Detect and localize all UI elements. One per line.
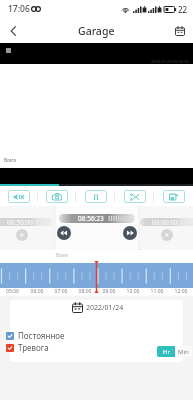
staticText: 2025-01-03 05:56:30 — [151, 59, 189, 64]
staticText: Всего — [4, 157, 17, 163]
button[interactable]: 2022/01/24 — [70, 300, 126, 315]
button[interactable]: Forward — [123, 226, 137, 240]
staticText: Hr — [163, 348, 170, 356]
staticText: 08:50:00 — [7, 218, 33, 226]
button[interactable]: Rewind — [57, 226, 71, 240]
staticText: 2022/01/24 — [86, 303, 124, 313]
staticText: Min — [178, 348, 189, 356]
staticText: Garage — [78, 24, 115, 38]
button[interactable]: Тревога — [4, 340, 51, 355]
button[interactable]: Min — [175, 346, 192, 357]
staticText: 12:00 — [169, 288, 193, 295]
staticText: Всего — [139, 248, 152, 254]
staticText: 11:00 — [145, 288, 169, 295]
button[interactable]: Hr — [157, 346, 175, 357]
button[interactable]: Mute — [8, 190, 30, 203]
staticText: 06:00 — [25, 288, 49, 295]
button[interactable]: Back — [0, 18, 26, 43]
staticText: Всего — [56, 252, 69, 258]
button[interactable]: Snapshot — [46, 190, 68, 203]
button[interactable]: 08:50:00 — [0, 218, 52, 246]
button[interactable]: 09:00:00 — [140, 218, 193, 246]
button[interactable]: Calendar — [167, 18, 193, 43]
staticText: 09:00:00 — [152, 218, 178, 226]
staticText: Постоянное — [18, 330, 65, 341]
staticText: 10:00 — [121, 288, 145, 295]
staticText: 08:00 — [73, 288, 97, 295]
button[interactable]: Pause — [85, 190, 107, 203]
staticText: 22 — [178, 4, 188, 15]
button[interactable]: Clip — [124, 190, 146, 203]
button[interactable]: Постоянное — [4, 328, 67, 343]
button[interactable]: Save — [163, 190, 185, 203]
staticText: 08:56:23 — [78, 214, 104, 223]
staticText: 07:00 — [49, 288, 73, 295]
staticText: Тревога — [18, 342, 49, 353]
staticText: 05:00 — [0, 288, 25, 295]
staticText: 09:00 — [97, 288, 121, 295]
staticText: 17:06 — [8, 3, 30, 15]
